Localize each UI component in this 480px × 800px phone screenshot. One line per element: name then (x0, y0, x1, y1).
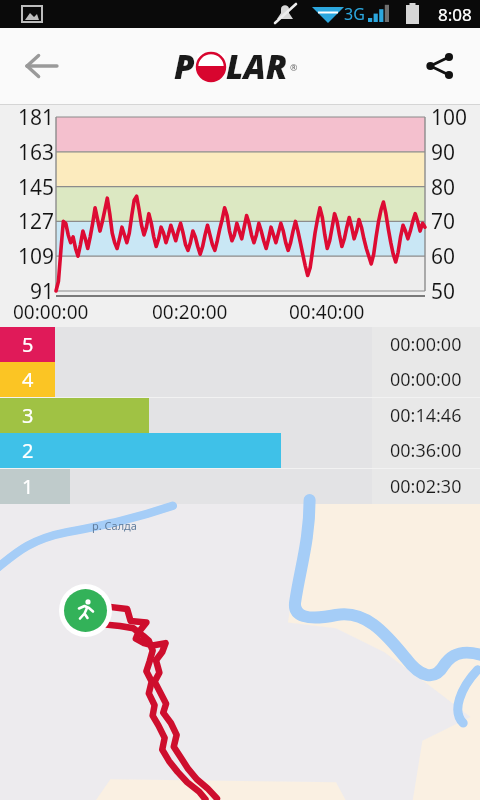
staticText: 163 (2, 138, 54, 167)
staticText: 00:00:00 (13, 299, 89, 325)
staticText: 90 (431, 138, 479, 167)
staticText: 70 (431, 207, 479, 236)
staticText: 00:00:00 (390, 367, 462, 392)
button[interactable]: 3 (0, 398, 480, 433)
button[interactable]: 4 (0, 362, 480, 397)
staticText: ® (290, 61, 298, 73)
staticText: 5 (22, 331, 34, 358)
staticText: 100 (431, 103, 479, 132)
staticText: 181 (2, 103, 54, 132)
staticText: 00:20:00 (152, 299, 228, 325)
staticText: 60 (431, 242, 479, 271)
staticText: р. Салда (92, 518, 137, 533)
staticText: LAR (226, 44, 288, 89)
button[interactable]: Back (14, 38, 70, 94)
staticText: 00:02:30 (390, 474, 462, 499)
staticText: 145 (2, 173, 54, 202)
button[interactable]: Share (414, 40, 466, 92)
staticText: 80 (431, 173, 479, 202)
staticText: P (174, 44, 195, 89)
staticText: 3G (344, 3, 365, 25)
staticText: 3 (22, 402, 34, 429)
staticText: 00:00:00 (390, 332, 462, 357)
staticText: 8:08 (438, 3, 472, 26)
other: Start point (59, 584, 112, 637)
staticText: 00:14:46 (390, 403, 462, 428)
button[interactable]: р. Салда (0, 504, 480, 800)
staticText: 2 (22, 437, 34, 464)
button[interactable]: 5 (0, 327, 480, 362)
staticText: 4 (22, 366, 34, 393)
staticText: 91 (2, 277, 54, 306)
staticText: 1 (22, 473, 34, 500)
button[interactable]: 2 (0, 433, 480, 468)
staticText: 127 (2, 207, 54, 236)
staticText: 50 (431, 277, 479, 306)
staticText: 00:40:00 (289, 299, 365, 325)
button[interactable]: 1 (0, 469, 480, 504)
staticText: 109 (2, 242, 54, 271)
staticText: 00:36:00 (390, 438, 462, 463)
